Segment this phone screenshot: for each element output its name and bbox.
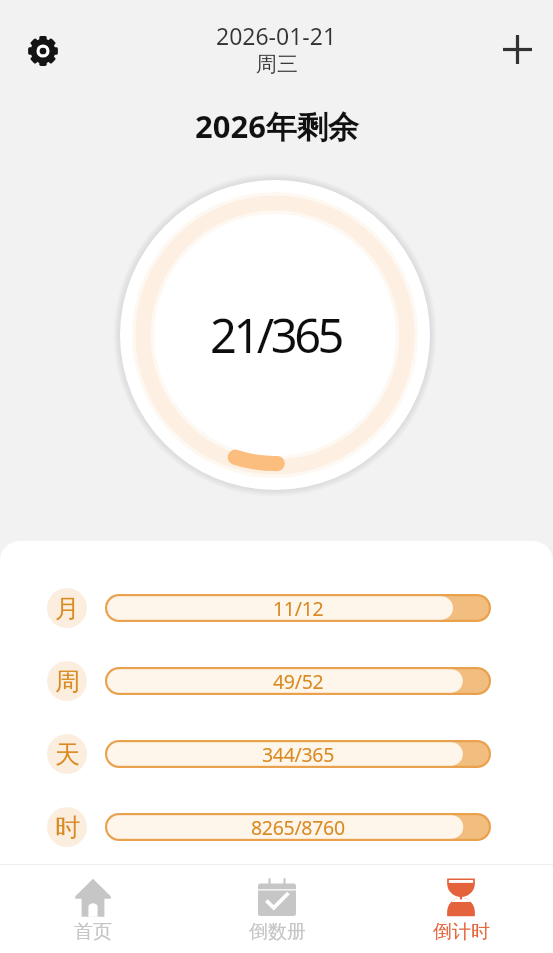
- button[interactable]: Add: [497, 29, 537, 69]
- staticText: 49/52: [273, 668, 324, 695]
- staticText: 8265/8760: [251, 814, 345, 841]
- button[interactable]: 倒数册: [185, 864, 369, 953]
- staticText: 月: [55, 593, 80, 624]
- staticText: 时: [55, 812, 80, 843]
- staticText: 11/12: [273, 595, 324, 622]
- staticText: 2026年剩余: [195, 105, 359, 147]
- staticText: 周: [55, 666, 80, 697]
- staticText: 首页: [74, 920, 112, 944]
- staticText: 周三: [256, 51, 298, 77]
- staticText: 2026-01-21: [216, 20, 337, 51]
- button[interactable]: 月: [0, 571, 553, 644]
- staticText: 倒数册: [249, 920, 306, 944]
- button[interactable]: 倒计时: [369, 864, 553, 953]
- button[interactable]: 时: [0, 790, 553, 863]
- button[interactable]: 首页: [0, 864, 185, 953]
- staticText: 344/365: [262, 741, 335, 768]
- button[interactable]: 天: [0, 717, 553, 790]
- staticText: 倒计时: [433, 920, 490, 944]
- button[interactable]: 周: [0, 644, 553, 717]
- button[interactable]: Settings: [23, 31, 63, 71]
- staticText: 天: [55, 739, 80, 770]
- staticText: 21/365: [210, 303, 341, 367]
